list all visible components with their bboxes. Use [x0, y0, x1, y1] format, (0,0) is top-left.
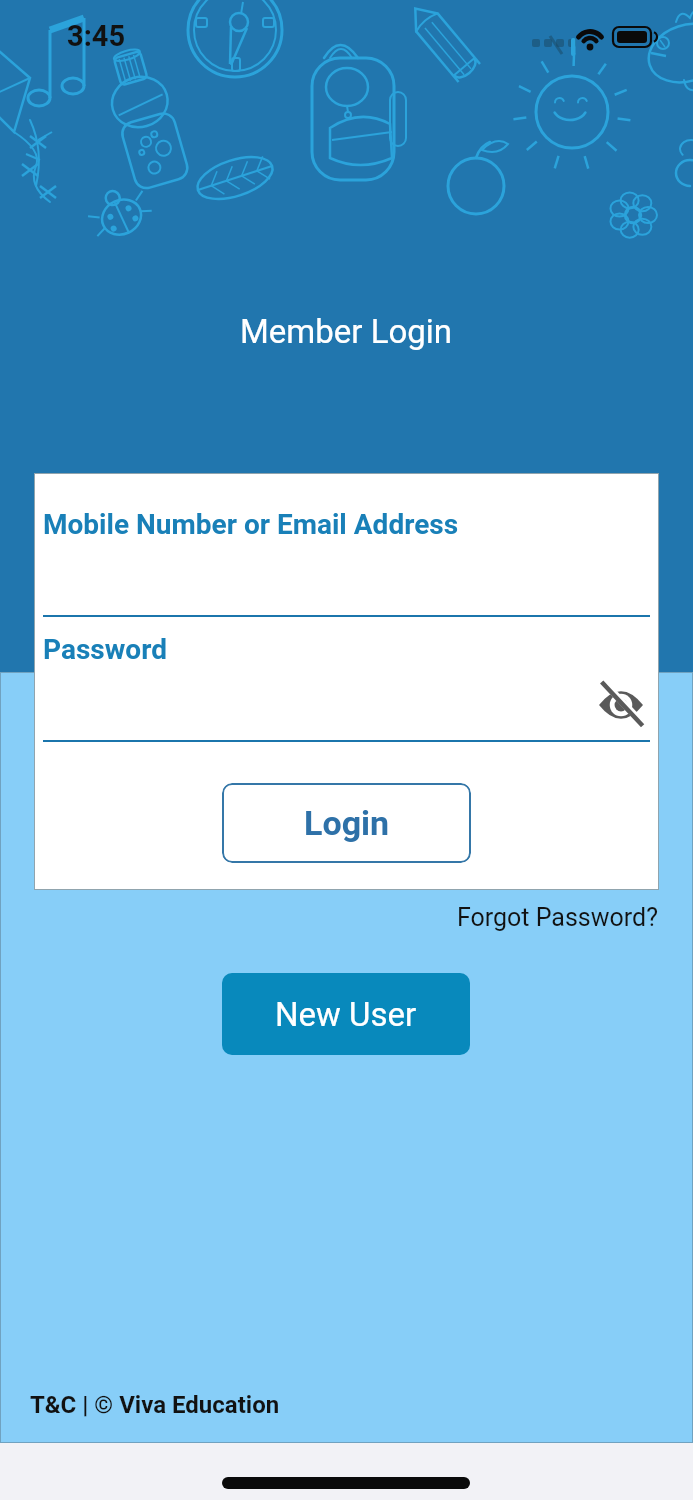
button[interactable]: T&C | © Viva Education	[30, 1391, 280, 1419]
staticText: Login	[304, 803, 390, 843]
button[interactable]: New User	[222, 973, 470, 1055]
button[interactable]	[598, 682, 644, 728]
staticText: Mobile Number or Email Address	[43, 508, 459, 541]
button[interactable]: Forgot Password?	[457, 903, 658, 932]
staticText: Password	[43, 633, 167, 666]
staticText: 3:45	[67, 19, 126, 53]
staticText: New User	[275, 995, 417, 1034]
staticText: Member Login	[240, 312, 453, 351]
button[interactable]: Login	[222, 783, 471, 863]
